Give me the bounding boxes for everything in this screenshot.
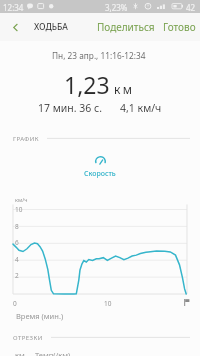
staticText: Темп(/км) xyxy=(35,350,71,356)
staticText: ХОДЬБА xyxy=(34,21,68,33)
staticText: Готово xyxy=(163,20,196,34)
button[interactable]: ХОДЬБА xyxy=(31,16,71,38)
staticText: км xyxy=(15,350,25,356)
staticText: ГРАФИК xyxy=(13,135,39,143)
staticText: 4 xyxy=(15,255,19,264)
staticText: Время (мин.) xyxy=(16,311,64,321)
staticText: км xyxy=(114,81,135,97)
staticText: км/ч xyxy=(15,196,28,203)
staticText: 2 xyxy=(15,271,19,280)
button[interactable]: Скорость xyxy=(78,167,122,181)
staticText: ОТРЕЗКИ xyxy=(13,334,43,342)
button[interactable]: Назад xyxy=(5,17,25,37)
staticText: 8 xyxy=(15,222,19,231)
staticText: 0 xyxy=(13,299,17,308)
staticText: 4,1 км/ч xyxy=(120,101,162,115)
staticText: 12:34 xyxy=(3,2,24,13)
staticText: 6 xyxy=(15,238,19,247)
staticText: 42 xyxy=(186,2,196,13)
staticText: 1,23 xyxy=(64,69,110,100)
staticText: Поделиться xyxy=(97,20,155,34)
staticText: 3,23% xyxy=(105,2,128,13)
staticText: Скорость xyxy=(84,169,116,179)
staticText: 10 xyxy=(15,205,23,214)
button[interactable]: Готово xyxy=(160,16,199,38)
staticText: Пн, 23 апр., 11:16-12:34 xyxy=(52,50,146,61)
staticText: 17 мин. 36 с. xyxy=(38,101,103,115)
button[interactable]: Поделиться xyxy=(94,16,158,38)
staticText: 10 xyxy=(104,299,112,308)
